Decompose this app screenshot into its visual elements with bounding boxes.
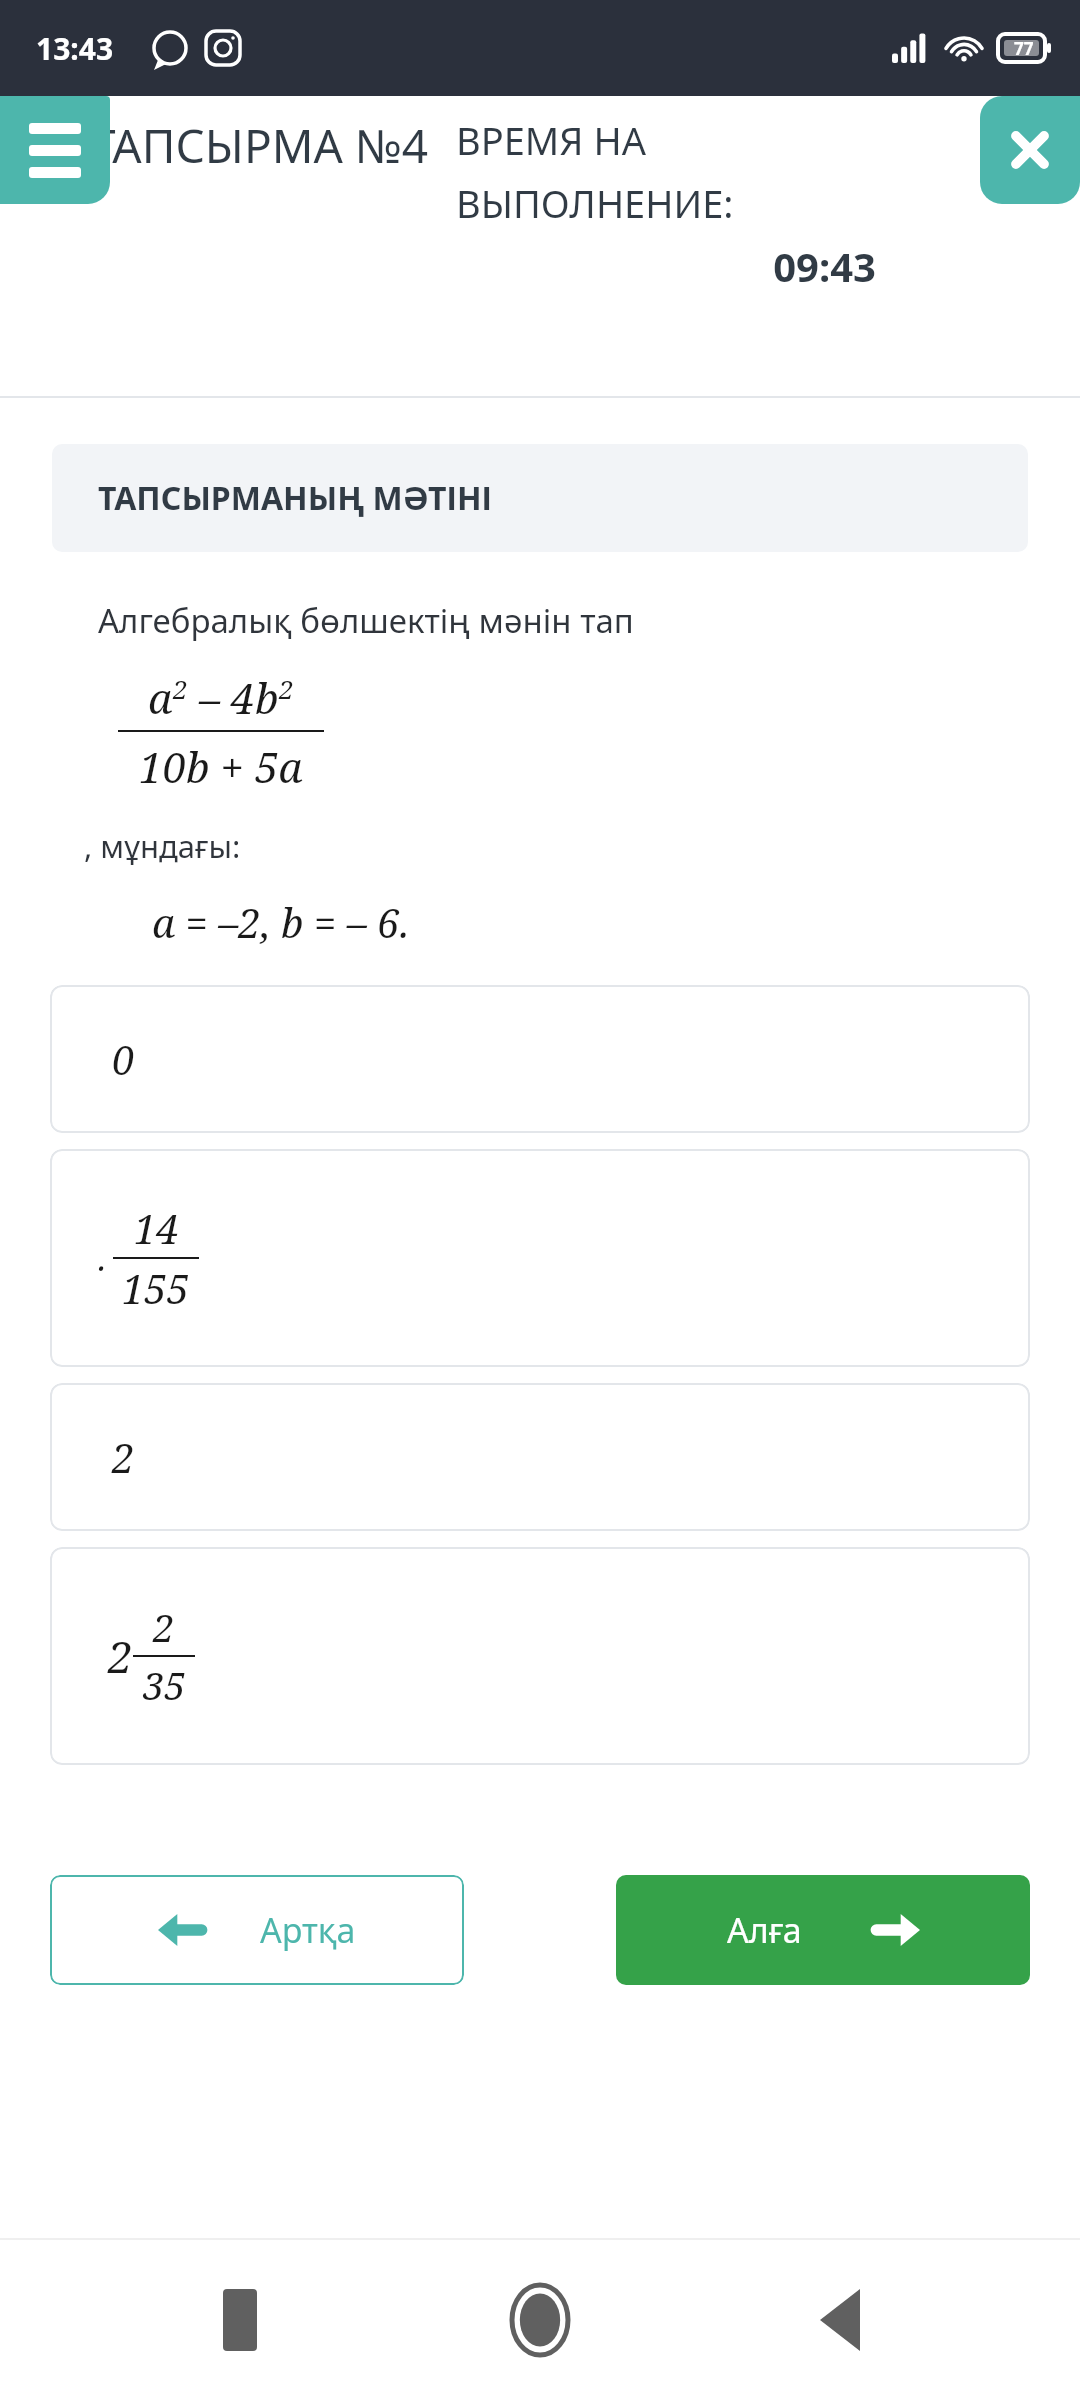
staticText: ТАПСЫРМАНЫҢ МӘТІНІ <box>98 476 492 520</box>
staticText: ВРЕМЯ НА ВЫПОЛНЕНИЕ: <box>456 114 876 229</box>
button[interactable]: Close <box>980 96 1080 204</box>
button[interactable]: Menu <box>0 96 110 204</box>
button[interactable]: 0 <box>50 985 1030 1133</box>
button[interactable]: Артқа <box>50 1875 464 1985</box>
staticText: a <box>148 669 173 726</box>
staticText: Алгебралық бөлшектің мәнін тап <box>98 598 634 643</box>
staticText: a = –2, b = – 6. <box>152 895 410 949</box>
staticText: 14 <box>134 1201 179 1255</box>
button[interactable]: 2 <box>50 1547 1030 1765</box>
staticText: Алға <box>727 1907 802 1953</box>
button[interactable]: Алға <box>616 1875 1030 1985</box>
staticText: b <box>255 669 279 726</box>
button[interactable]: Back <box>780 2260 900 2380</box>
staticText: 35 <box>143 1659 186 1711</box>
staticText: 2 <box>108 1626 133 1686</box>
button[interactable]: . <box>50 1149 1030 1367</box>
staticText: Артқа <box>260 1907 356 1953</box>
staticText: 77 <box>1014 37 1034 60</box>
staticText: . <box>98 1235 107 1281</box>
staticText: , мұндағы: <box>84 825 241 867</box>
staticText: 2 <box>112 1430 135 1484</box>
staticText: 155 <box>122 1261 190 1315</box>
staticText: 13:43 <box>36 28 114 69</box>
staticText: 0 <box>112 1032 135 1086</box>
button[interactable]: Home <box>480 2260 600 2380</box>
staticText: – 4 <box>188 669 255 726</box>
staticText: 2 <box>153 1601 175 1653</box>
staticText: 09:43 <box>456 239 876 293</box>
staticText: 2 <box>173 671 188 706</box>
staticText: 10b + 5a <box>139 738 303 795</box>
staticText: ТАПСЫРМА №4 <box>90 114 450 177</box>
button[interactable]: 2 <box>50 1383 1030 1531</box>
staticText: 2 <box>279 671 294 706</box>
button[interactable]: Recents <box>180 2260 300 2380</box>
